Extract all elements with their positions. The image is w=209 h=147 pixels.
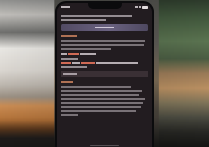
button[interactable]: [61, 71, 148, 77]
button[interactable]: [61, 24, 148, 31]
